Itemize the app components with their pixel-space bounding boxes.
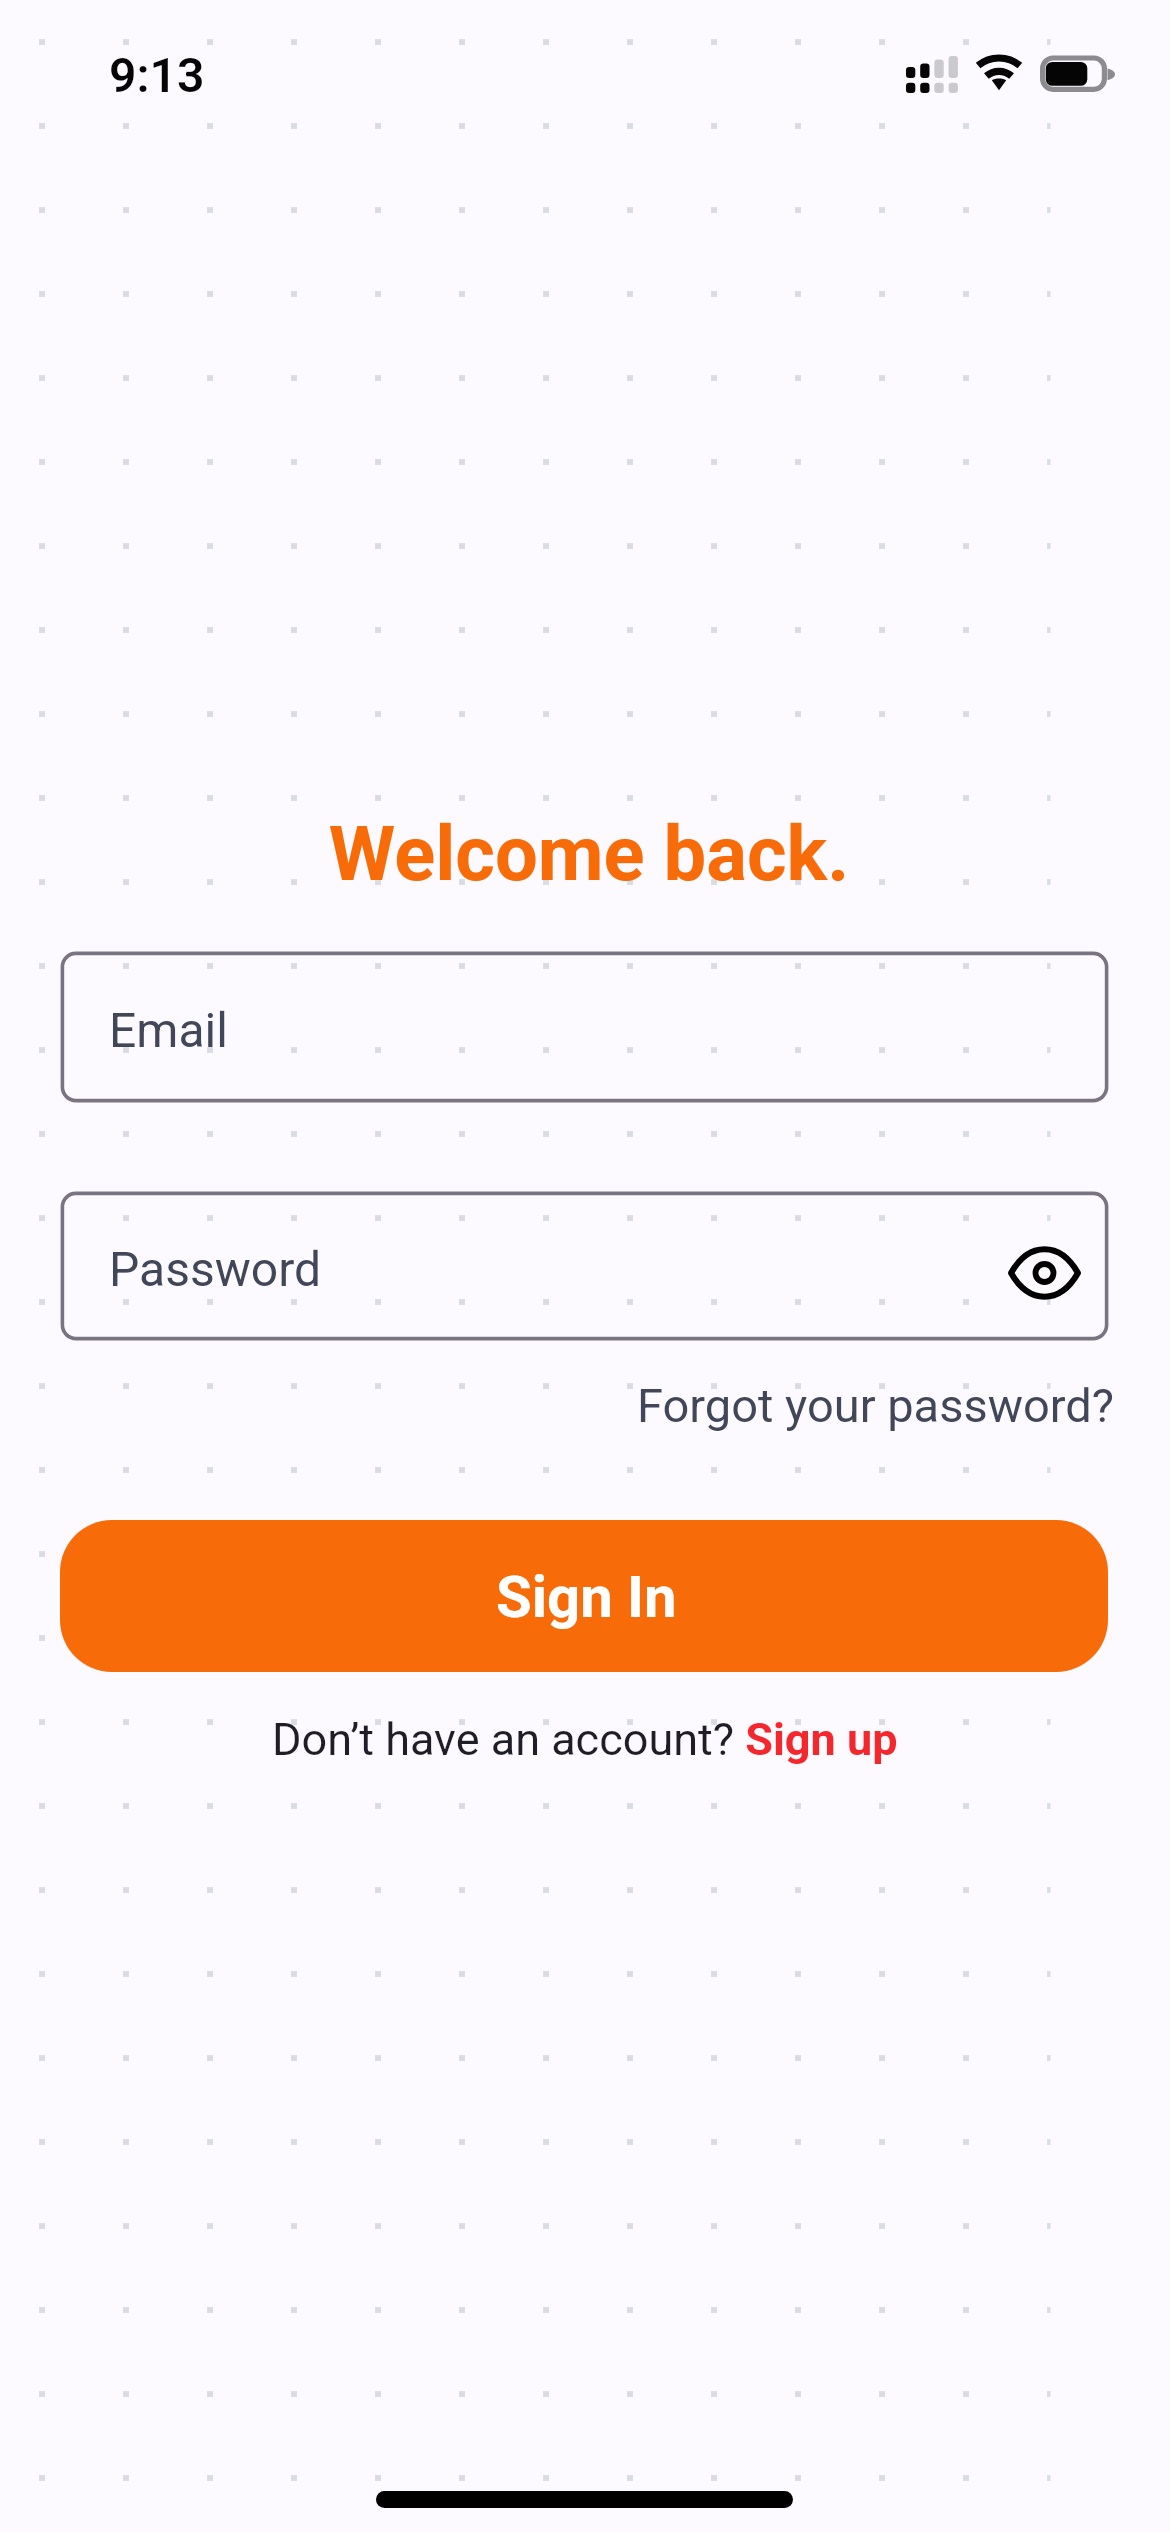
button[interactable]: Email bbox=[60, 951, 1109, 1103]
button[interactable]: Show password bbox=[991, 1221, 1097, 1325]
staticText: 9:13 bbox=[109, 47, 205, 103]
button[interactable]: Password bbox=[60, 1191, 1109, 1341]
other: Cellular signal bbox=[906, 55, 959, 93]
button[interactable]: Don’t have an account? Sign up bbox=[272, 1713, 898, 1766]
staticText: Sign In bbox=[496, 1563, 677, 1631]
other: Battery bbox=[1040, 55, 1116, 93]
staticText: Don’t have an account? Sign up bbox=[272, 1713, 898, 1766]
staticText: Password bbox=[109, 1241, 322, 1297]
button[interactable]: Sign In bbox=[60, 1520, 1108, 1672]
other: Wi-Fi bbox=[974, 54, 1024, 94]
staticText: Welcome back. bbox=[4, 809, 1170, 898]
staticText: Forgot your password? bbox=[637, 1378, 1115, 1433]
staticText: Email bbox=[109, 1002, 228, 1058]
button[interactable]: Forgot your password? bbox=[637, 1378, 1115, 1433]
